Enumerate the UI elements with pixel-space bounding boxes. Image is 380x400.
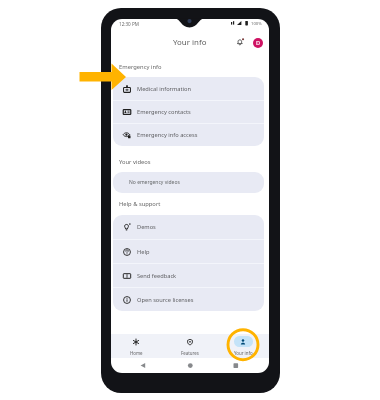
staticText: Demos xyxy=(137,223,156,231)
staticText: Your info xyxy=(234,350,253,356)
button[interactable]: Features xyxy=(166,334,214,358)
staticText: Help & support xyxy=(119,200,161,208)
button[interactable]: Open source licenses xyxy=(113,288,264,311)
button[interactable]: Home xyxy=(112,334,160,358)
button[interactable]: Account xyxy=(253,38,263,48)
button[interactable]: Emergency contacts xyxy=(113,101,264,123)
staticText: Emergency info access xyxy=(137,131,198,139)
staticText: Your videos xyxy=(119,158,151,166)
button[interactable]: Your info xyxy=(219,334,267,358)
button[interactable]: Send feedback xyxy=(113,264,264,287)
button[interactable]: Help xyxy=(113,240,264,263)
button[interactable]: Emergency info access xyxy=(113,124,264,146)
staticText: 100% xyxy=(251,21,262,27)
button[interactable]: Notifications xyxy=(236,38,244,46)
staticText: No emergency videos xyxy=(129,179,180,186)
button[interactable]: Medical information xyxy=(113,77,264,100)
staticText: Emergency contacts xyxy=(137,108,191,116)
staticText: Your info xyxy=(173,37,207,48)
staticText: 12:30 PM xyxy=(119,21,139,27)
staticText: Help xyxy=(137,248,150,256)
staticText: Features xyxy=(181,350,199,356)
button[interactable]: No emergency videos xyxy=(113,172,264,193)
staticText: Send feedback xyxy=(137,272,177,280)
staticText: D xyxy=(256,39,261,47)
button[interactable]: Demos xyxy=(113,215,264,239)
staticText: Medical information xyxy=(137,85,191,93)
staticText: Emergency info xyxy=(119,63,162,71)
staticText: Open source licenses xyxy=(137,296,194,304)
staticText: Home xyxy=(130,350,143,356)
